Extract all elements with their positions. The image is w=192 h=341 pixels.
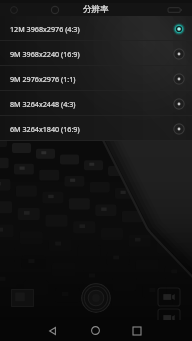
- button[interactable]: Back: [42, 320, 64, 341]
- button[interactable]: Shutter: [81, 283, 111, 313]
- button[interactable]: Recents: [126, 320, 148, 341]
- staticText: 9M 3968x2240 (16:9): [10, 49, 80, 59]
- staticText: 9M 2976x2976 (1:1): [10, 74, 76, 84]
- button[interactable]: 9M 2976x2976 (1:1): [0, 66, 192, 91]
- staticText: 12M 3968x2976 (4:3): [10, 24, 80, 34]
- button[interactable]: Photo mode: [158, 288, 180, 306]
- button[interactable]: Video mode: [158, 309, 180, 327]
- button[interactable]: 12M 3968x2976 (4:3): [0, 16, 192, 41]
- button[interactable]: 8M 3264x2448 (4:3): [0, 91, 192, 116]
- button[interactable]: Flash: [9, 5, 19, 15]
- staticText: 分辨率: [83, 4, 109, 15]
- button[interactable]: Settings: [50, 5, 60, 15]
- button[interactable]: Home: [84, 320, 106, 341]
- button[interactable]: Gallery: [11, 289, 34, 307]
- staticText: 6M 3264x1840 (16:9): [10, 124, 80, 134]
- staticText: 8M 3264x2448 (4:3): [10, 99, 76, 109]
- button[interactable]: 9M 3968x2240 (16:9): [0, 41, 192, 66]
- button[interactable]: 6M 3264x1840 (16:9): [0, 116, 192, 141]
